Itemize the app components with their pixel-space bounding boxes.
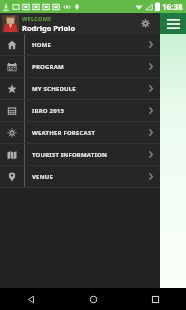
button[interactable]: IBRO 2015 — [0, 100, 160, 121]
button[interactable]: Open navigation menu — [160, 13, 186, 34]
button[interactable]: WELCOME — [0, 13, 160, 34]
button[interactable]: PROGRAM — [0, 56, 160, 77]
button[interactable]: TOURIST INFORMATION — [0, 144, 160, 165]
button[interactable]: Settings — [135, 13, 156, 34]
button[interactable]: VENUE — [0, 166, 160, 187]
staticText: IBRO 2015 — [32, 107, 142, 115]
button[interactable]: MY SCHEDULE — [0, 78, 160, 99]
button[interactable]: Back — [0, 288, 62, 310]
button[interactable]: HOME — [0, 34, 160, 55]
button[interactable]: WEATHER FORECAST — [0, 122, 160, 143]
staticText: Rodrigo Priolo — [22, 23, 76, 33]
staticText: PROGRAM — [32, 63, 142, 71]
staticText: VENUE — [32, 173, 142, 181]
staticText: WELCOME — [22, 15, 52, 22]
staticText: 16:38 — [162, 1, 183, 12]
staticText: WEATHER FORECAST — [32, 129, 142, 137]
staticText: MY SCHEDULE — [32, 85, 142, 93]
staticText: TOURIST INFORMATION — [32, 151, 142, 159]
button[interactable]: Recent apps — [124, 288, 186, 310]
button[interactable]: Home — [62, 288, 124, 310]
staticText: HOME — [32, 41, 142, 49]
